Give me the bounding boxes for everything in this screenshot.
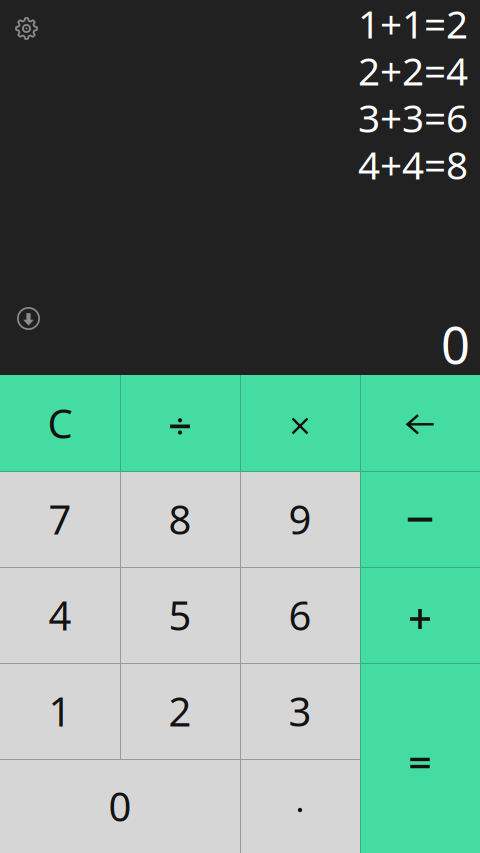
staticText: 3+3=6 — [358, 92, 468, 143]
staticText: 2 — [168, 684, 191, 737]
staticText: 7 — [48, 492, 71, 545]
button[interactable]: 5 — [120, 567, 240, 663]
staticText: 0 — [441, 311, 470, 378]
button[interactable]: Plus — [360, 567, 480, 663]
button[interactable]: Calculation history — [0, 296, 51, 341]
button[interactable]: Minus — [360, 471, 480, 567]
button[interactable]: 9 — [240, 471, 360, 567]
staticText: 8 — [168, 492, 191, 545]
staticText: 0 — [108, 779, 131, 832]
button[interactable]: Backspace — [360, 375, 480, 471]
staticText: 1+1=2 — [358, 0, 468, 49]
button[interactable]: C — [0, 375, 120, 471]
staticText: 2+2=4 — [358, 45, 468, 96]
button[interactable]: 2 — [120, 663, 240, 759]
button[interactable]: 0 — [0, 759, 240, 853]
button[interactable]: 1 — [0, 663, 120, 759]
button[interactable]: Equals — [360, 663, 480, 853]
button[interactable]: Multiply — [240, 375, 360, 471]
staticText: C — [47, 396, 72, 449]
staticText: 4+4=8 — [358, 139, 468, 190]
button[interactable]: Decimal point — [240, 759, 360, 853]
button[interactable]: 7 — [0, 471, 120, 567]
staticText: 6 — [288, 588, 311, 641]
button[interactable]: 4 — [0, 567, 120, 663]
staticText: 4 — [48, 588, 71, 641]
button[interactable]: Divide — [120, 375, 240, 471]
staticText: 9 — [288, 492, 311, 545]
button[interactable]: 8 — [120, 471, 240, 567]
button[interactable]: 6 — [240, 567, 360, 663]
button[interactable]: 3 — [240, 663, 360, 759]
staticText: 5 — [168, 588, 191, 641]
button[interactable]: Settings — [0, 0, 49, 51]
staticText: 1 — [48, 684, 71, 737]
staticText: 3 — [288, 684, 311, 737]
